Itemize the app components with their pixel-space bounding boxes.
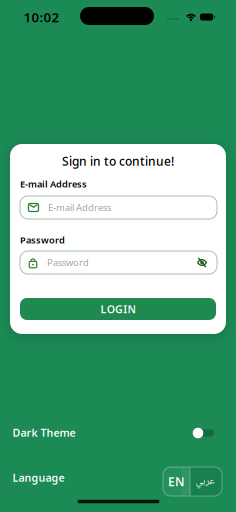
button[interactable]: Password — [20, 251, 217, 274]
staticText: 10:02 — [23, 8, 59, 26]
button[interactable]: عربي — [188, 467, 220, 496]
staticText: عربي — [195, 473, 214, 490]
staticText: Password — [47, 256, 89, 269]
button[interactable]: Show password — [193, 253, 211, 271]
staticText: E-mail Address — [48, 201, 111, 214]
staticText: EN — [168, 473, 185, 489]
staticText: Sign in to continue! — [62, 153, 174, 169]
button[interactable]: E-mail Address — [20, 196, 217, 219]
staticText: Password — [20, 234, 65, 246]
staticText: E-mail Address — [20, 178, 87, 190]
staticText: Dark Theme — [12, 425, 75, 440]
button[interactable]: EN — [163, 467, 190, 496]
staticText: Language — [12, 470, 64, 485]
staticText: LOGIN — [100, 302, 136, 316]
button[interactable]: Dark Theme toggle — [192, 425, 215, 440]
button[interactable]: LOGIN — [20, 298, 216, 320]
